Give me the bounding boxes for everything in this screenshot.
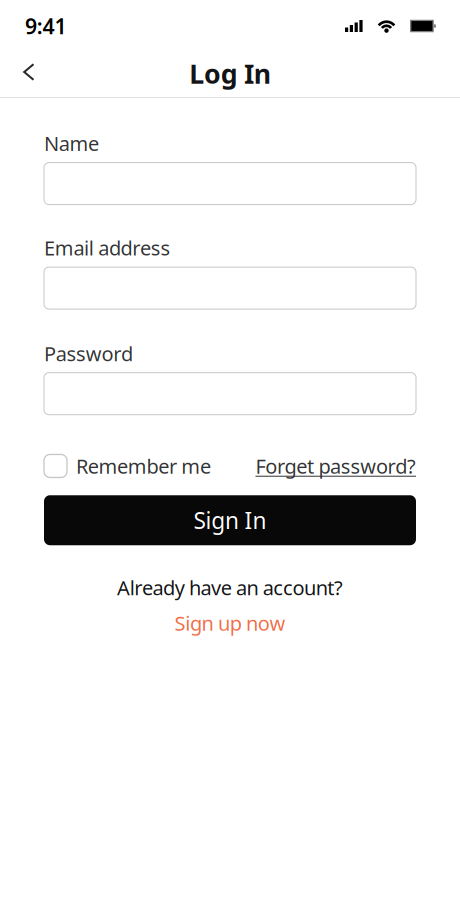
staticText: Sign up now bbox=[174, 610, 285, 636]
staticText: Forget password? bbox=[255, 453, 416, 479]
staticText: Already have an account? bbox=[117, 574, 343, 601]
button[interactable]: Sign In bbox=[44, 495, 416, 545]
button[interactable]: Email address bbox=[44, 267, 416, 309]
staticText: Password bbox=[44, 340, 133, 367]
button[interactable]: Sign up now bbox=[174, 610, 285, 636]
staticText: Remember me bbox=[76, 453, 211, 479]
staticText: 9:41 bbox=[25, 12, 66, 40]
button[interactable]: Password bbox=[44, 373, 416, 415]
button[interactable]: Back bbox=[0, 47, 51, 97]
button[interactable]: Name bbox=[44, 163, 416, 205]
staticText: Log In bbox=[189, 56, 271, 91]
staticText: Name bbox=[44, 130, 99, 157]
button[interactable]: Forget password? bbox=[255, 453, 416, 479]
staticText: Sign In bbox=[194, 505, 266, 535]
button[interactable]: Remember me bbox=[44, 453, 211, 479]
staticText: Email address bbox=[44, 235, 170, 261]
